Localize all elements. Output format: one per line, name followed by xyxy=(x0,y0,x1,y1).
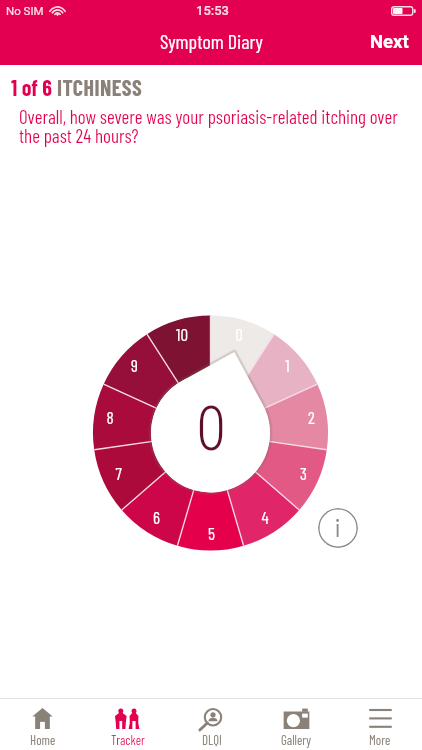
staticText: ITCHINESS xyxy=(57,74,143,100)
button[interactable]: Information xyxy=(318,508,358,548)
staticText: 15:53 xyxy=(196,3,230,18)
button[interactable]: More xyxy=(338,699,422,750)
button[interactable]: 0 xyxy=(224,322,254,346)
button[interactable]: 1 xyxy=(272,353,302,377)
button[interactable]: 2 xyxy=(296,405,326,429)
staticText: 1 xyxy=(285,355,290,375)
button[interactable]: Next xyxy=(356,23,422,63)
staticText: 6 xyxy=(153,507,160,527)
button[interactable]: DLQI xyxy=(170,699,254,750)
staticText: 4 xyxy=(261,507,269,527)
button[interactable]: 10 xyxy=(167,322,197,346)
button[interactable]: Home xyxy=(0,699,85,750)
staticText: 3 xyxy=(300,463,307,483)
staticText: 0 xyxy=(235,324,243,344)
staticText: 7 xyxy=(115,463,122,483)
staticText: 8 xyxy=(106,407,114,427)
staticText: Home xyxy=(30,732,56,748)
button[interactable]: Tracker xyxy=(85,699,170,750)
staticText: Tracker xyxy=(111,732,145,748)
staticText: 5 xyxy=(208,523,215,543)
staticText: Overall, how severe was your psoriasis-r… xyxy=(19,105,400,147)
button[interactable]: 4 xyxy=(250,505,280,529)
button[interactable]: 6 xyxy=(141,505,171,529)
staticText: 1 of 6 xyxy=(11,74,57,100)
staticText: i xyxy=(335,512,341,542)
button[interactable]: 3 xyxy=(288,461,318,485)
button[interactable]: Gallery xyxy=(254,699,338,750)
staticText: DLQI xyxy=(202,732,222,748)
staticText: 9 xyxy=(131,355,138,375)
staticText: 2 xyxy=(308,407,315,427)
staticText: Next xyxy=(370,31,409,53)
staticText: Gallery xyxy=(281,732,311,748)
staticText: More xyxy=(369,732,391,748)
staticText: Symptom Diary xyxy=(160,29,263,53)
button[interactable]: 5 xyxy=(196,521,226,545)
button[interactable]: 0 xyxy=(166,383,256,473)
button[interactable]: 9 xyxy=(119,353,149,377)
staticText: 10 xyxy=(176,324,188,344)
staticText: No SIM xyxy=(6,4,44,17)
staticText: 0 xyxy=(196,393,226,464)
button[interactable]: 8 xyxy=(95,405,125,429)
button[interactable]: 7 xyxy=(103,461,133,485)
